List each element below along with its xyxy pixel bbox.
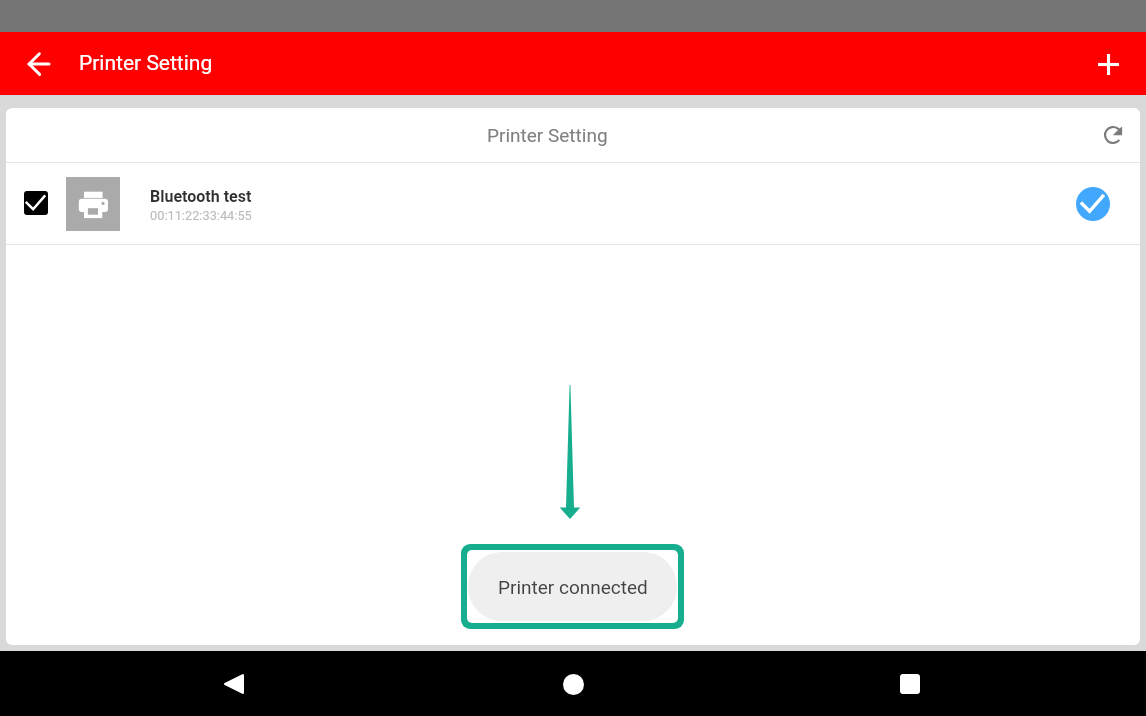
staticText: Printer Setting	[487, 124, 608, 146]
staticText: Printer Setting	[79, 51, 213, 76]
button[interactable]: Recents	[886, 660, 934, 708]
button[interactable]: Bluetooth test	[6, 163, 1140, 244]
staticText: Printer connected	[498, 576, 648, 598]
button[interactable]: Refresh	[1093, 115, 1133, 155]
button[interactable]: Add printer	[1087, 43, 1129, 85]
button[interactable]: Back	[210, 660, 258, 708]
button[interactable]: Back	[16, 41, 62, 87]
button[interactable]: Home	[549, 660, 597, 708]
staticText: Bluetooth test	[150, 187, 252, 206]
staticText: 00:11:22:33:44:55	[150, 208, 252, 223]
